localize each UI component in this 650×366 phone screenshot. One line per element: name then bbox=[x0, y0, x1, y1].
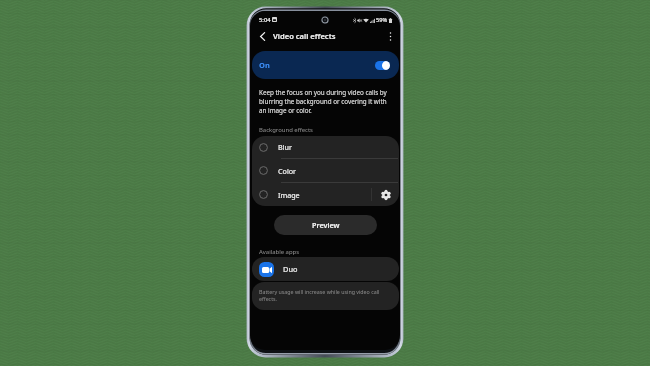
button[interactable]: Blur bbox=[252, 136, 399, 158]
staticText: 5:04 bbox=[259, 16, 271, 24]
staticText: On bbox=[259, 60, 270, 70]
button[interactable]: Image settings bbox=[372, 183, 399, 206]
button[interactable]: Color bbox=[252, 159, 399, 182]
staticText: 59% bbox=[376, 16, 388, 24]
staticText: Keep the focus on you during video calls… bbox=[259, 88, 390, 115]
staticText: Video call effects bbox=[273, 31, 336, 41]
staticText: Preview bbox=[312, 220, 340, 230]
button[interactable]: Image bbox=[252, 183, 399, 206]
button[interactable]: Back bbox=[254, 28, 270, 44]
staticText: Available apps bbox=[259, 248, 300, 256]
staticText: Color bbox=[278, 166, 297, 176]
button[interactable]: More options bbox=[383, 29, 397, 43]
staticText: Image bbox=[278, 190, 300, 200]
staticText: Background effects bbox=[259, 126, 313, 134]
button[interactable]: Preview bbox=[274, 215, 377, 235]
staticText: Duo bbox=[283, 264, 298, 274]
button[interactable]: On bbox=[252, 51, 399, 79]
staticText: Battery usage will increase while using … bbox=[259, 288, 383, 303]
staticText: Blur bbox=[278, 142, 292, 152]
button[interactable]: Duo bbox=[252, 257, 399, 281]
